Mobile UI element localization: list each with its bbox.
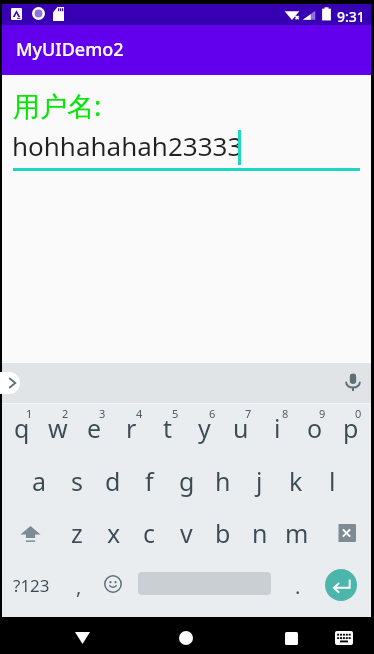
button[interactable]: h bbox=[204, 455, 241, 507]
staticText: p bbox=[343, 411, 359, 445]
button[interactable]: c bbox=[131, 507, 168, 559]
staticText: y bbox=[198, 411, 211, 445]
staticText: z bbox=[71, 516, 83, 550]
staticText: hohhahahah23333 bbox=[12, 128, 243, 163]
staticText: . bbox=[295, 573, 301, 600]
staticText: c bbox=[143, 516, 156, 550]
button[interactable]: Show more suggestions bbox=[0, 372, 20, 394]
button[interactable]: Shift bbox=[2, 507, 58, 559]
staticText: d bbox=[105, 464, 121, 498]
button[interactable]: b bbox=[204, 507, 241, 559]
button[interactable]: m bbox=[278, 507, 315, 559]
button[interactable]: Back bbox=[68, 624, 96, 652]
staticText: 2 bbox=[62, 406, 69, 421]
staticText: s bbox=[71, 464, 83, 498]
button[interactable]: 4 bbox=[113, 403, 150, 455]
button[interactable]: Home bbox=[172, 624, 200, 652]
staticText: w bbox=[48, 411, 68, 445]
staticText: MyUIDemo2 bbox=[16, 37, 124, 62]
staticText: ?123 bbox=[13, 574, 50, 597]
button[interactable]: 5 bbox=[149, 403, 186, 455]
button[interactable]: g bbox=[168, 455, 205, 507]
button[interactable]: v bbox=[168, 507, 205, 559]
staticText: i bbox=[274, 411, 281, 445]
button[interactable]: 0 bbox=[332, 403, 369, 455]
staticText: k bbox=[289, 464, 303, 498]
staticText: 3 bbox=[99, 406, 106, 421]
staticText: 9 bbox=[319, 406, 326, 421]
staticText: o bbox=[307, 411, 323, 445]
button[interactable]: Voice input bbox=[343, 372, 363, 392]
button[interactable]: , bbox=[60, 559, 97, 617]
button[interactable]: . bbox=[279, 559, 316, 617]
button[interactable]: 1 bbox=[3, 403, 40, 455]
button[interactable]: d bbox=[94, 455, 131, 507]
staticText: g bbox=[179, 464, 195, 498]
button[interactable]: 2 bbox=[39, 403, 76, 455]
staticText: j bbox=[256, 464, 263, 498]
staticText: 6 bbox=[209, 406, 216, 421]
staticText: l bbox=[329, 464, 336, 498]
staticText: 用户名: bbox=[13, 87, 102, 124]
staticText: n bbox=[252, 516, 268, 550]
button[interactable]: MyUIDemo2 bbox=[2, 25, 371, 75]
staticText: u bbox=[233, 411, 249, 445]
button[interactable]: n bbox=[241, 507, 278, 559]
button[interactable]: f bbox=[131, 455, 168, 507]
button[interactable]: 3 bbox=[76, 403, 113, 455]
button[interactable]: 6 bbox=[186, 403, 223, 455]
button[interactable]: Change keyboard bbox=[331, 625, 357, 651]
staticText: 8 bbox=[282, 406, 289, 421]
staticText: 4 bbox=[136, 406, 143, 421]
staticText: f bbox=[145, 464, 154, 498]
button[interactable]: hohhahahah23333 bbox=[11, 125, 359, 169]
staticText: e bbox=[87, 411, 102, 445]
staticText: v bbox=[180, 516, 193, 550]
staticText: 0 bbox=[355, 406, 362, 421]
button[interactable]: x bbox=[95, 507, 132, 559]
staticText: x bbox=[107, 516, 121, 550]
staticText: r bbox=[126, 411, 137, 445]
button[interactable]: Enter bbox=[325, 569, 357, 601]
staticText: , bbox=[76, 573, 82, 600]
button[interactable]: Recent apps bbox=[277, 624, 305, 652]
staticText: a bbox=[32, 464, 47, 498]
staticText: 1 bbox=[26, 406, 33, 421]
staticText: t bbox=[163, 411, 173, 445]
staticText: m bbox=[285, 516, 309, 550]
staticText: 9:31 bbox=[337, 7, 365, 26]
button[interactable]: l bbox=[314, 455, 351, 507]
button[interactable]: z bbox=[58, 507, 95, 559]
staticText: h bbox=[215, 464, 231, 498]
staticText: b bbox=[215, 516, 231, 550]
button[interactable]: a bbox=[21, 455, 58, 507]
staticText: 5 bbox=[172, 406, 179, 421]
button[interactable]: Backspace bbox=[315, 507, 371, 559]
button[interactable]: k bbox=[277, 455, 314, 507]
button[interactable]: j bbox=[241, 455, 278, 507]
button[interactable]: Emoji bbox=[94, 559, 132, 617]
button[interactable]: 8 bbox=[259, 403, 296, 455]
staticText: 7 bbox=[245, 406, 252, 421]
button[interactable]: ?123 bbox=[2, 559, 60, 617]
button[interactable]: 7 bbox=[222, 403, 259, 455]
button[interactable]: s bbox=[58, 455, 95, 507]
staticText: q bbox=[14, 411, 30, 445]
button[interactable]: 9 bbox=[296, 403, 333, 455]
